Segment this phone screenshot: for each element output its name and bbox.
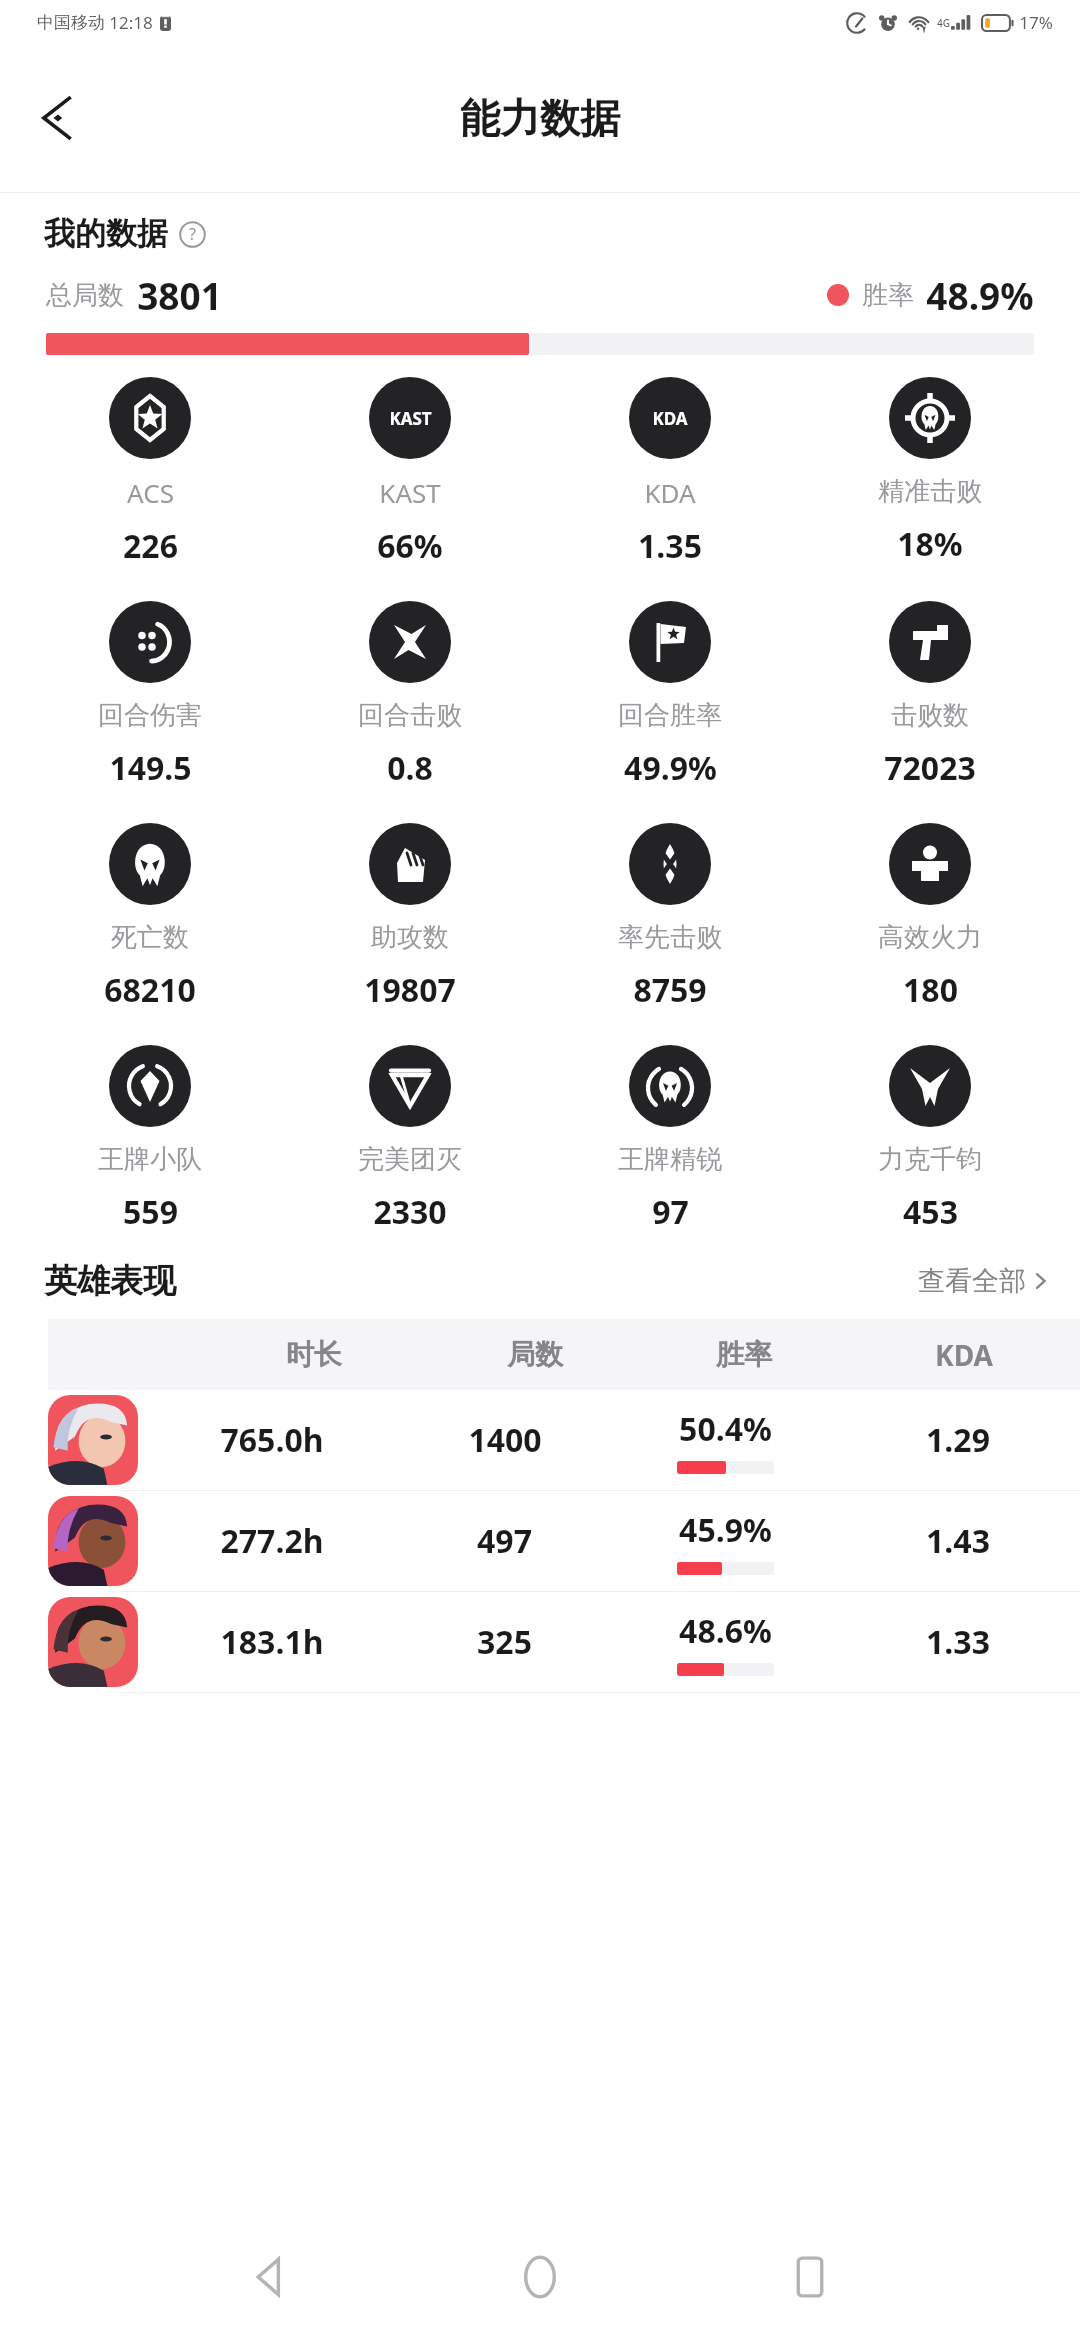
staticText: 48.6% xyxy=(679,1609,772,1653)
button[interactable]: ACS xyxy=(20,377,280,568)
staticText: 48.9% xyxy=(926,270,1034,320)
staticText: 97 xyxy=(652,1190,689,1234)
button[interactable]: 王牌小队 xyxy=(20,1045,280,1234)
staticText: 总局数 xyxy=(46,279,124,312)
staticText: 8759 xyxy=(633,968,707,1012)
staticText: 1.43 xyxy=(926,1519,990,1563)
staticText: 回合胜率 xyxy=(618,699,722,732)
button[interactable]: 完美团灭 xyxy=(280,1045,540,1234)
staticText: 时长 xyxy=(286,1337,342,1372)
button[interactable]: 王牌精锐 xyxy=(540,1045,800,1234)
staticText: 12:18 xyxy=(109,11,153,34)
staticText: KAST xyxy=(379,475,441,510)
staticText: 胜率 xyxy=(862,279,914,312)
button[interactable]: KAST xyxy=(280,377,540,568)
staticText: 我的数据 xyxy=(44,214,168,253)
staticText: 1.33 xyxy=(926,1620,990,1664)
button[interactable]: 击败数 xyxy=(800,601,1060,790)
staticText: 149.5 xyxy=(109,746,192,790)
staticText: KDA xyxy=(644,475,696,510)
staticText: 击败数 xyxy=(891,699,969,732)
staticText: 王牌小队 xyxy=(98,1143,202,1176)
staticText: 1.29 xyxy=(926,1418,990,1462)
staticText: 72023 xyxy=(884,746,976,790)
staticText: 死亡数 xyxy=(111,921,189,954)
button[interactable]: KDA xyxy=(540,377,800,568)
staticText: 183.1h xyxy=(220,1620,324,1664)
staticText: 66% xyxy=(377,524,443,568)
button[interactable]: 率先击败 xyxy=(540,823,800,1012)
staticText: 率先击败 xyxy=(618,921,722,954)
staticText: 英雄表现 xyxy=(44,1260,176,1302)
staticText: 226 xyxy=(123,524,178,568)
button[interactable]: Home xyxy=(492,2229,588,2325)
button[interactable]: 高效火力 xyxy=(800,823,1060,1012)
staticText: 49.9% xyxy=(624,746,717,790)
button[interactable]: 183.1h xyxy=(0,1592,1080,1692)
staticText: 325 xyxy=(477,1620,532,1664)
staticText: 277.2h xyxy=(220,1519,324,1563)
staticText: 力克千钧 xyxy=(878,1143,982,1176)
staticText: 精准击败 xyxy=(878,475,982,508)
button[interactable]: Back xyxy=(18,79,96,157)
button[interactable]: 277.2h xyxy=(0,1491,1080,1591)
button[interactable]: 查看全部 xyxy=(918,1256,1050,1306)
button[interactable]: Recent apps xyxy=(762,2229,858,2325)
button[interactable]: Back xyxy=(222,2229,318,2325)
staticText: 17% xyxy=(1019,11,1053,34)
staticText: ? xyxy=(189,223,196,245)
staticText: 回合击败 xyxy=(358,699,462,732)
staticText: 1.35 xyxy=(638,524,702,568)
staticText: 能力数据 xyxy=(460,93,620,143)
staticText: KAST xyxy=(389,407,432,430)
staticText: 50.4% xyxy=(679,1407,772,1451)
staticText: 高效火力 xyxy=(878,921,982,954)
staticText: 中国移动 xyxy=(37,12,105,33)
staticText: 1400 xyxy=(468,1418,542,1462)
staticText: 45.9% xyxy=(679,1508,772,1552)
staticText: 回合伤害 xyxy=(98,699,202,732)
staticText: 18% xyxy=(897,522,963,566)
button[interactable]: 回合击败 xyxy=(280,601,540,790)
button[interactable]: 助攻数 xyxy=(280,823,540,1012)
staticText: 68210 xyxy=(104,968,196,1012)
staticText: 王牌精锐 xyxy=(618,1143,722,1176)
staticText: 胜率 xyxy=(716,1337,772,1372)
staticText: 局数 xyxy=(507,1337,563,1372)
staticText: 完美团灭 xyxy=(358,1143,462,1176)
staticText: KDA xyxy=(652,407,688,430)
button[interactable]: Help xyxy=(177,219,207,249)
staticText: ACS xyxy=(127,475,174,510)
button[interactable]: 力克千钧 xyxy=(800,1045,1060,1234)
staticText: 助攻数 xyxy=(371,921,449,954)
staticText: 4G xyxy=(937,16,950,30)
staticText: 2330 xyxy=(373,1190,447,1234)
button[interactable]: 765.0h xyxy=(0,1390,1080,1490)
staticText: 查看全部 xyxy=(918,1264,1026,1298)
button[interactable]: 回合胜率 xyxy=(540,601,800,790)
staticText: KDA xyxy=(935,1336,993,1374)
button[interactable]: 死亡数 xyxy=(20,823,280,1012)
staticText: 559 xyxy=(123,1190,178,1234)
staticText: 19807 xyxy=(364,968,456,1012)
staticText: 180 xyxy=(903,968,958,1012)
staticText: 497 xyxy=(477,1519,532,1563)
button[interactable]: 回合伤害 xyxy=(20,601,280,790)
staticText: 3801 xyxy=(137,270,222,320)
staticText: 765.0h xyxy=(220,1418,324,1462)
staticText: 0.8 xyxy=(387,746,433,790)
button[interactable]: 精准击败 xyxy=(800,377,1060,566)
staticText: 453 xyxy=(903,1190,958,1234)
